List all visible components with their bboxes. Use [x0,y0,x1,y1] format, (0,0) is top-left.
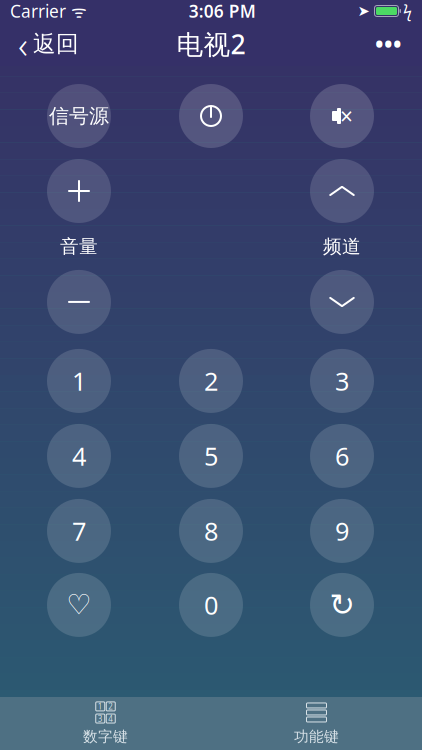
staticText: ↺ [329,587,355,622]
button[interactable]: 9 [310,499,374,563]
button[interactable]: 1 [47,349,111,413]
button[interactable]: Channel down [310,270,374,334]
staticText: 3 [335,364,349,398]
staticText: 4 [108,713,113,724]
staticText: 1 [98,701,103,712]
staticText: 数字键 [83,727,128,745]
staticText: 电视2 [176,26,245,62]
button[interactable]: 1 [0,696,211,750]
staticText: 3 [98,713,103,724]
button[interactable]: Volume up [47,159,111,223]
button[interactable]: More [361,21,416,67]
staticText: 5 [204,439,218,473]
button[interactable]: Power [179,84,243,148]
button[interactable]: 0 [179,573,243,637]
button[interactable]: 5 [179,424,243,488]
button[interactable]: 8 [179,499,243,563]
staticText: ••• [375,29,402,59]
staticText: 2 [204,364,218,398]
staticText: ᯤ [66,0,87,22]
button[interactable]: 3 [310,349,374,413]
staticText: Carrier [10,0,66,22]
staticText: ‹ [18,19,28,69]
staticText: ϟ [403,0,412,22]
staticText: 8 [204,514,218,548]
button[interactable]: 7 [47,499,111,563]
button[interactable]: ‹ [6,13,91,75]
staticText: 7 [72,514,86,548]
staticText: 功能键 [294,727,339,745]
button[interactable]: Back [310,573,374,637]
staticText: 返回 [33,30,79,58]
button[interactable]: 4 [47,424,111,488]
staticText: 4 [72,439,86,473]
button[interactable]: Favorite [47,573,111,637]
button[interactable]: Channel up [310,159,374,223]
staticText: 信号源 [49,104,109,128]
staticText: ➤ [357,3,369,19]
button[interactable]: 2 [179,349,243,413]
button[interactable]: Volume down [47,270,111,334]
button[interactable]: Mute [310,84,374,148]
button[interactable]: 功能键 [211,696,422,750]
staticText: 2 [108,701,113,712]
staticText: × [340,101,353,131]
staticText: 3:06 PM [189,0,256,22]
staticText: 1 [72,364,86,398]
button[interactable]: 6 [310,424,374,488]
staticText: 9 [335,514,349,548]
button[interactable]: 信号源 [47,84,111,148]
staticText: 0 [204,588,218,622]
staticText: 频道 [323,235,361,258]
staticText: 音量 [60,235,98,258]
staticText: ♡ [66,589,91,621]
staticText: 6 [335,439,349,473]
